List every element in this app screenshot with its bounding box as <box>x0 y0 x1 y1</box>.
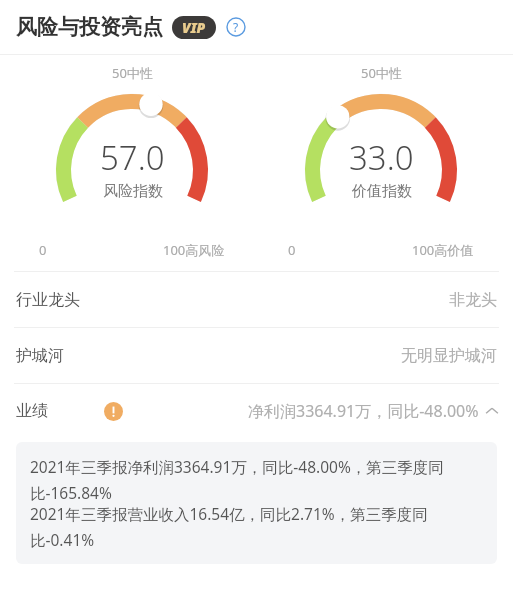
staticText: 100高风险 <box>163 241 225 259</box>
button[interactable]: 业绩 <box>0 384 513 438</box>
staticText: 业绩 <box>16 401 48 421</box>
staticText: ? <box>233 19 239 35</box>
staticText: 2021年三季报净利润3364.91万，同比-48.00%，第三季度同比-165… <box>30 456 483 503</box>
staticText: 风险与投资亮点 <box>16 14 163 40</box>
staticText: 2021年三季报营业收入16.54亿，同比2.71%，第三季度同比-0.41% <box>30 503 483 550</box>
staticText: 非龙头 <box>449 290 497 310</box>
staticText: 无明显护城河 <box>401 346 497 366</box>
staticText: 0 <box>39 241 47 259</box>
button[interactable]: 行业龙头 <box>0 272 513 327</box>
button[interactable]: 50中性 <box>265 55 497 271</box>
button[interactable]: 帮助 <box>226 17 246 37</box>
staticText: 57.0 <box>100 135 165 180</box>
button[interactable]: VIP <box>172 16 216 39</box>
staticText: VIP <box>182 18 206 37</box>
button[interactable]: 50中性 <box>16 55 248 271</box>
other: 收起 <box>485 404 499 418</box>
staticText: 0 <box>288 241 296 259</box>
staticText: 行业龙头 <box>16 290 80 310</box>
staticText: 33.0 <box>349 135 414 180</box>
staticText: 100高价值 <box>412 241 474 259</box>
staticText: 50中性 <box>361 64 402 82</box>
button[interactable]: 护城河 <box>0 328 513 383</box>
staticText: 价值指数 <box>352 182 412 201</box>
staticText: 风险指数 <box>103 182 163 201</box>
staticText: 50中性 <box>112 64 153 82</box>
staticText: 净利润3364.91万，同比-48.00% <box>248 400 479 422</box>
staticText: 护城河 <box>16 346 64 366</box>
